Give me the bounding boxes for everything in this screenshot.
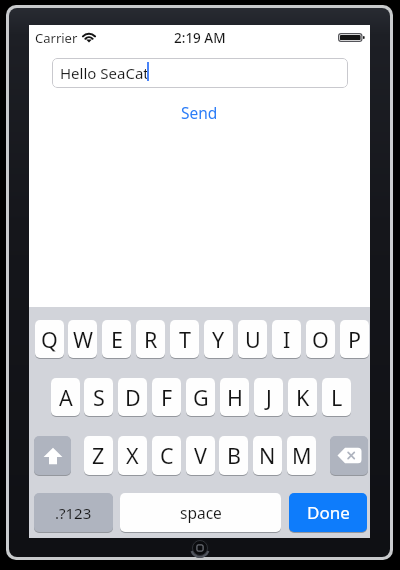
button[interactable]: Done bbox=[289, 493, 367, 533]
button[interactable]: L bbox=[322, 378, 351, 417]
staticText: P bbox=[348, 325, 362, 354]
button[interactable]: O bbox=[306, 320, 335, 359]
button[interactable]: .?123 bbox=[34, 493, 113, 533]
staticText: H bbox=[227, 383, 243, 412]
button[interactable]: Hello SeaCat bbox=[52, 58, 348, 88]
button[interactable]: T bbox=[170, 320, 199, 359]
button[interactable]: C bbox=[152, 436, 181, 476]
staticText: D bbox=[125, 383, 141, 412]
button[interactable]: V bbox=[186, 436, 215, 476]
button[interactable]: W bbox=[68, 320, 97, 359]
button[interactable]: B bbox=[219, 436, 248, 476]
staticText: K bbox=[296, 383, 310, 412]
button[interactable]: H bbox=[220, 378, 249, 417]
button[interactable]: M bbox=[287, 436, 316, 476]
staticText: N bbox=[259, 441, 276, 470]
button[interactable]: space bbox=[120, 493, 281, 533]
staticText: Hello SeaCat bbox=[60, 63, 149, 83]
button[interactable] bbox=[34, 436, 71, 476]
button[interactable]: E bbox=[102, 320, 131, 359]
staticText: Y bbox=[212, 325, 225, 354]
staticText: 2:19 AM bbox=[174, 29, 226, 46]
button[interactable]: X bbox=[118, 436, 147, 476]
button[interactable]: K bbox=[288, 378, 317, 417]
button[interactable]: A bbox=[51, 378, 80, 417]
button[interactable]: S bbox=[84, 378, 113, 417]
staticText: Q bbox=[41, 325, 58, 354]
button[interactable]: Z bbox=[84, 436, 113, 476]
staticText: E bbox=[111, 325, 123, 354]
button[interactable]: Send bbox=[164, 100, 235, 124]
staticText: O bbox=[312, 325, 329, 354]
staticText: Done bbox=[307, 501, 350, 524]
staticText: T bbox=[179, 325, 191, 354]
button[interactable]: N bbox=[253, 436, 282, 476]
button[interactable]: Q bbox=[35, 320, 64, 359]
staticText: F bbox=[161, 383, 173, 412]
staticText: W bbox=[73, 325, 93, 354]
staticText: C bbox=[160, 441, 174, 470]
button[interactable] bbox=[330, 436, 368, 476]
staticText: .?123 bbox=[55, 503, 92, 523]
staticText: I bbox=[283, 325, 291, 354]
staticText: space bbox=[180, 502, 222, 523]
button[interactable]: Y bbox=[204, 320, 233, 359]
staticText: B bbox=[227, 441, 241, 470]
staticText: G bbox=[193, 383, 209, 412]
staticText: X bbox=[126, 441, 139, 470]
staticText: Send bbox=[181, 102, 218, 123]
button[interactable]: U bbox=[238, 320, 267, 359]
staticText: J bbox=[266, 383, 272, 412]
staticText: S bbox=[93, 383, 105, 412]
staticText: Z bbox=[92, 441, 105, 470]
button[interactable]: R bbox=[136, 320, 165, 359]
staticText: L bbox=[331, 383, 343, 412]
staticText: U bbox=[245, 325, 261, 354]
staticText: V bbox=[194, 441, 207, 470]
staticText: Carrier bbox=[35, 29, 78, 46]
staticText: R bbox=[144, 325, 158, 354]
button[interactable]: J bbox=[254, 378, 283, 417]
button[interactable]: F bbox=[152, 378, 181, 417]
staticText: M bbox=[292, 441, 312, 470]
staticText: A bbox=[59, 383, 73, 412]
button[interactable]: G bbox=[186, 378, 215, 417]
button[interactable]: D bbox=[118, 378, 147, 417]
button[interactable]: P bbox=[340, 320, 369, 359]
button[interactable]: I bbox=[272, 320, 301, 359]
